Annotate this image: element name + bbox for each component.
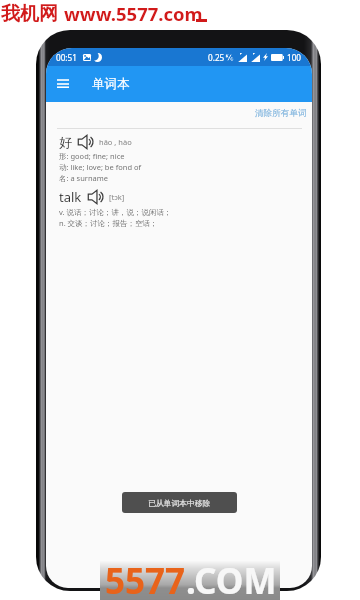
button[interactable]: Open navigation menu <box>46 66 80 102</box>
staticText: 0.25 <box>208 52 225 63</box>
staticText: 100 <box>287 52 302 63</box>
button[interactable]: talk <box>46 188 312 229</box>
staticText: 好 <box>59 134 72 150</box>
staticText: 单词本 <box>92 76 130 92</box>
staticText: v. 说话；讨论；讲，说；说闲话； <box>59 207 172 217</box>
staticText: 00:51 <box>56 52 77 63</box>
staticText: 清除所有单词 <box>255 108 307 119</box>
staticText: [tɔk] <box>109 192 125 202</box>
staticText: talk <box>59 188 82 206</box>
staticText: 我机网 <box>1 2 58 26</box>
staticText: n. 交谈；讨论；报告；空话； <box>59 218 158 228</box>
staticText: 5577 <box>105 557 186 600</box>
button[interactable]: 好 <box>46 134 312 184</box>
staticText: hǎo , hào <box>99 137 132 147</box>
button[interactable]: 清除所有单词 <box>250 107 312 124</box>
staticText: 名: a surname <box>59 173 109 183</box>
staticText: www.5577.com <box>64 1 203 26</box>
staticText: 动: like; love; be fond of <box>59 162 142 172</box>
button[interactable]: 已从单词本中移除 <box>122 492 237 513</box>
staticText: 已从单词本中移除 <box>148 498 211 508</box>
staticText: .COM <box>186 557 277 600</box>
staticText: 形: good; fine; nice <box>59 151 125 161</box>
